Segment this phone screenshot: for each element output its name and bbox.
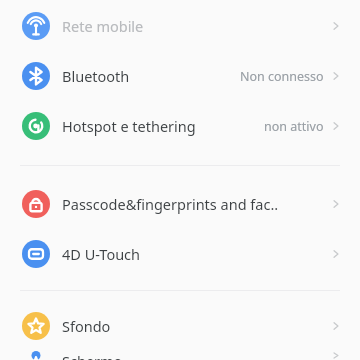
staticText: Non connesso (240, 68, 324, 85)
staticText: 4D U-Touch (62, 244, 330, 264)
staticText: Rete mobile (62, 16, 330, 36)
button[interactable]: Bluetooth (0, 51, 360, 101)
button[interactable]: Sfondo (0, 301, 360, 351)
staticText: non attivo (264, 118, 324, 135)
button[interactable]: 4D U-Touch (0, 229, 360, 279)
staticText: Hotspot e tethering (62, 116, 264, 136)
button[interactable]: Schermo (0, 351, 360, 360)
button[interactable]: Rete mobile (0, 1, 360, 51)
staticText: Bluetooth (62, 66, 240, 86)
button[interactable]: Passcode&fingerprints and fac.. (0, 179, 360, 229)
staticText: Passcode&fingerprints and fac.. (62, 194, 330, 214)
staticText: Sfondo (62, 316, 330, 336)
button[interactable]: Hotspot e tethering (0, 101, 360, 151)
staticText: Schermo (62, 351, 330, 360)
